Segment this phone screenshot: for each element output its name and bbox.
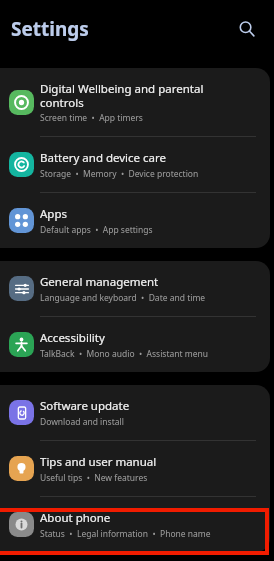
button[interactable]: Accessibility bbox=[0, 317, 270, 372]
staticText: About phone bbox=[40, 510, 111, 526]
staticText: Software update bbox=[40, 398, 130, 414]
staticText: Default apps • App settings bbox=[40, 224, 153, 236]
button[interactable]: Battery and device care bbox=[0, 137, 270, 192]
staticText: Status • Legal information • Phone name bbox=[40, 528, 211, 540]
staticText: Download and install bbox=[40, 416, 124, 428]
button[interactable]: Search bbox=[234, 16, 260, 42]
staticText: Screen time • App timers bbox=[40, 112, 143, 124]
button[interactable]: Digital Wellbeing and parental controls bbox=[0, 68, 270, 136]
staticText: Useful tips • New features bbox=[40, 472, 148, 484]
staticText: General management bbox=[40, 274, 159, 290]
staticText: Digital Wellbeing and parental controls bbox=[40, 81, 204, 110]
staticText: Tips and user manual bbox=[40, 454, 157, 470]
staticText: Battery and device care bbox=[40, 150, 167, 166]
button[interactable]: Apps bbox=[0, 193, 270, 248]
staticText: Settings bbox=[11, 16, 89, 42]
button[interactable]: Tips and user manual bbox=[0, 441, 270, 496]
staticText: TalkBack • Mono audio • Assistant menu bbox=[40, 348, 209, 360]
staticText: Storage • Memory • Device protection bbox=[40, 168, 199, 180]
button[interactable]: General management bbox=[0, 261, 270, 316]
staticText: Language and keyboard • Date and time bbox=[40, 292, 206, 304]
button[interactable]: About phone bbox=[0, 497, 270, 552]
staticText: Apps bbox=[40, 206, 68, 222]
button[interactable]: Software update bbox=[0, 385, 270, 440]
staticText: Accessibility bbox=[40, 330, 105, 346]
